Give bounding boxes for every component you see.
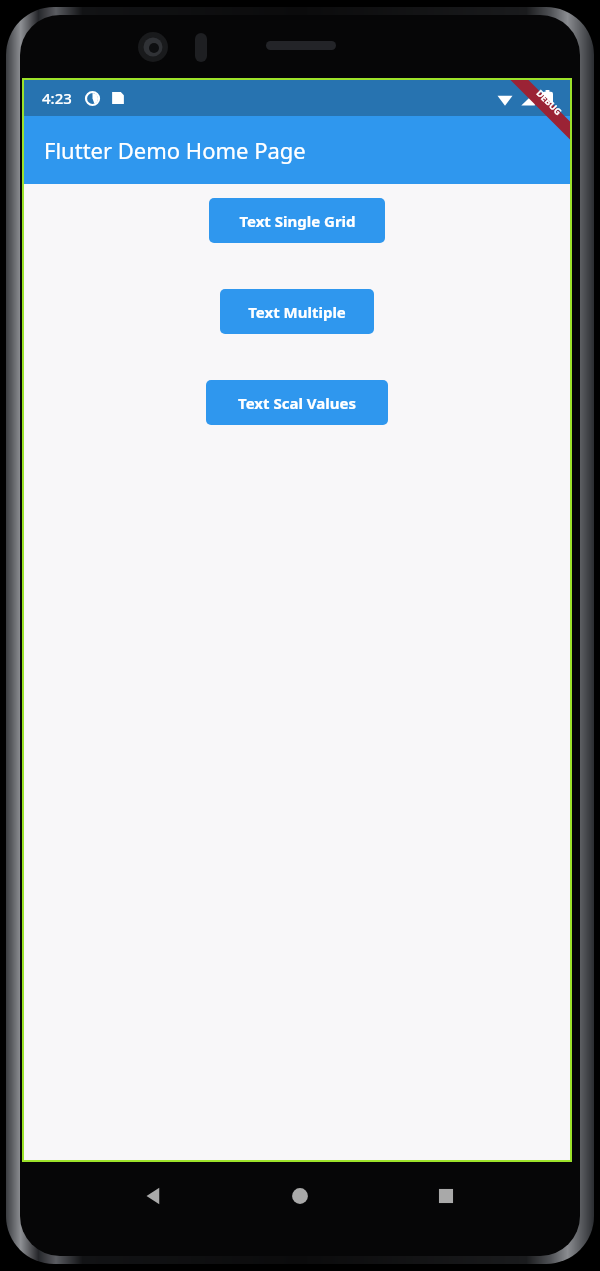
staticText: Text Scal Values bbox=[238, 393, 356, 413]
button[interactable]: Text Multiple bbox=[220, 289, 374, 334]
staticText: Text Single Grid bbox=[239, 211, 356, 231]
staticText: 4:23 bbox=[42, 88, 72, 108]
button[interactable]: Text Scal Values bbox=[206, 380, 388, 425]
staticText: Text Multiple bbox=[248, 302, 346, 322]
staticText: Flutter Demo Home Page bbox=[44, 135, 306, 165]
staticText: DEBUG bbox=[534, 87, 565, 117]
button[interactable]: Back bbox=[81, 1169, 227, 1223]
button[interactable]: Text Single Grid bbox=[209, 198, 385, 243]
button[interactable]: Recent apps bbox=[373, 1169, 519, 1223]
button[interactable]: Home bbox=[227, 1169, 373, 1223]
